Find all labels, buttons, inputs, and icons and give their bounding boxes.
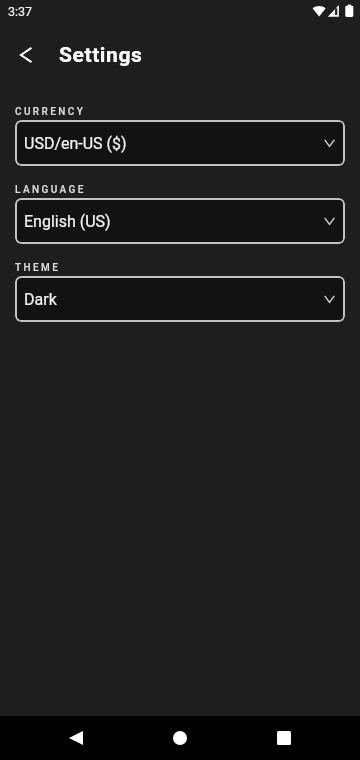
button[interactable]: English (US): [15, 198, 345, 244]
staticText: THEME: [15, 262, 61, 274]
button[interactable]: Dark: [15, 276, 345, 322]
staticText: Dark: [24, 290, 57, 309]
staticText: Settings: [59, 43, 143, 68]
button[interactable]: Back: [52, 716, 99, 760]
staticText: LANGUAGE: [15, 184, 86, 196]
staticText: 3:37: [8, 4, 33, 19]
button[interactable]: Recent apps: [260, 716, 307, 760]
staticText: USD/en-US ($): [24, 134, 127, 153]
button[interactable]: USD/en-US ($): [15, 120, 345, 166]
button[interactable]: Home: [156, 716, 203, 760]
staticText: CURRENCY: [15, 106, 86, 118]
button[interactable]: Back: [9, 39, 41, 71]
staticText: English (US): [24, 212, 111, 231]
